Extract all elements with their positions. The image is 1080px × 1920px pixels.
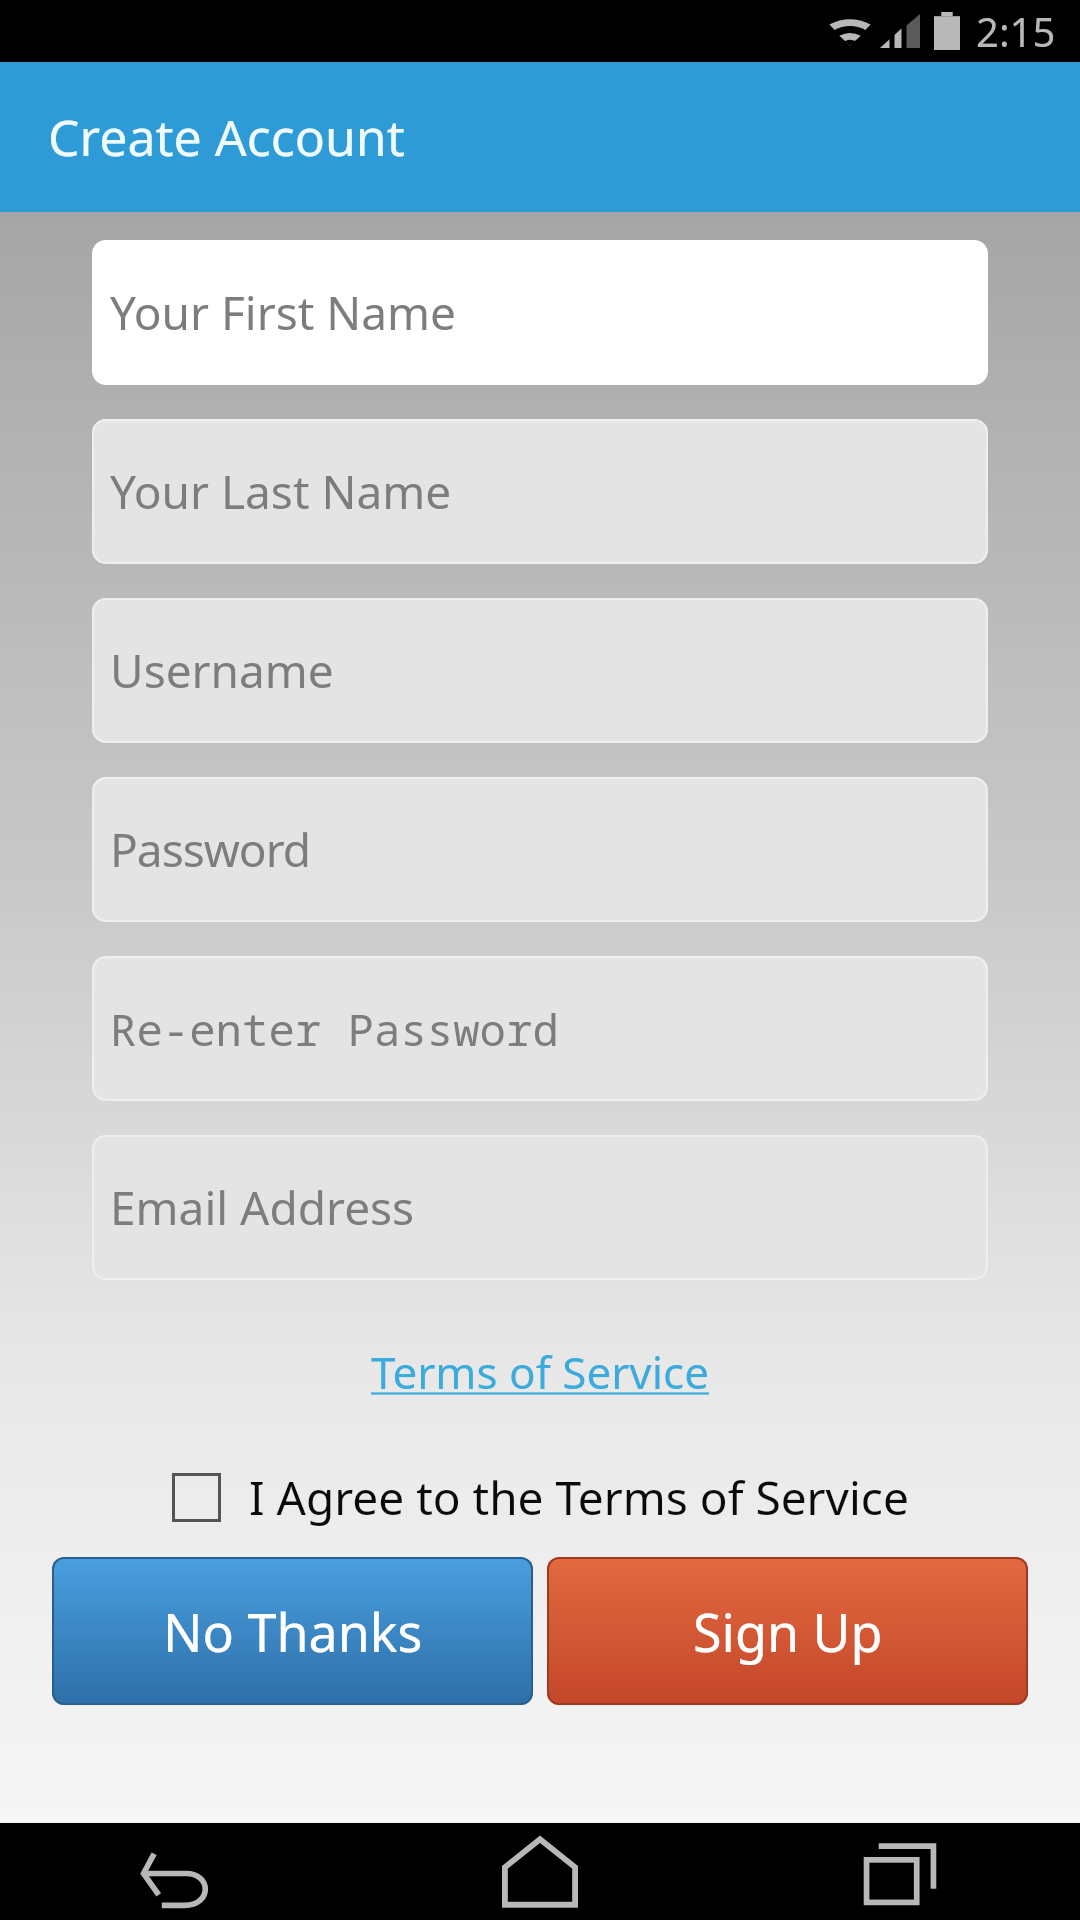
button[interactable]: I Agree to the Terms of Service checkbox [0, 1466, 1080, 1529]
button[interactable]: Back [0, 1823, 360, 1920]
staticText: Sign Up [693, 1596, 883, 1667]
staticText: 2:15 [976, 4, 1056, 58]
button[interactable]: Re-enter Password [92, 956, 988, 1101]
staticText: Your First Name [110, 281, 457, 344]
staticText: No Thanks [163, 1596, 423, 1667]
button[interactable]: Username [92, 598, 988, 743]
staticText: I Agree to the Terms of Service [249, 1466, 909, 1529]
staticText: Email Address [110, 1176, 415, 1239]
button[interactable]: No Thanks [52, 1557, 533, 1705]
staticText: Username [110, 639, 334, 702]
button[interactable]: Your First Name [92, 240, 988, 385]
button[interactable]: Recent apps [720, 1823, 1080, 1920]
staticText: Create Account [48, 103, 405, 171]
staticText: Terms of Service [371, 1342, 710, 1402]
button[interactable]: Sign Up [547, 1557, 1028, 1705]
button[interactable]: Your Last Name [92, 419, 988, 564]
other: I Agree to the Terms of Service checkbox [172, 1473, 221, 1522]
button[interactable]: Terms of Service [0, 1336, 1080, 1408]
staticText: Re-enter Password [110, 999, 559, 1059]
button[interactable]: Home [360, 1823, 720, 1920]
staticText: Password [110, 818, 311, 881]
button[interactable]: Password [92, 777, 988, 922]
button[interactable]: Email Address [92, 1135, 988, 1280]
staticText: Your Last Name [110, 460, 452, 523]
